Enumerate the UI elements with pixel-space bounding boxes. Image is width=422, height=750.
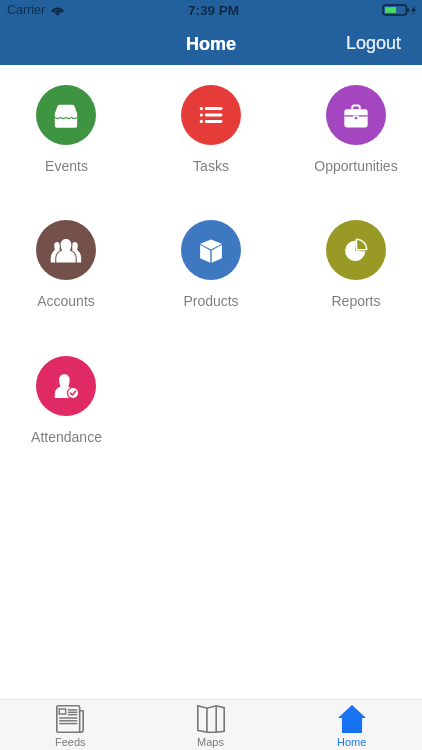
button[interactable]: Feeds bbox=[0, 700, 140, 750]
button[interactable]: Logout bbox=[328, 23, 422, 65]
button[interactable]: Tasks bbox=[155, 85, 267, 174]
staticText: Tasks bbox=[193, 158, 229, 174]
button[interactable]: Maps bbox=[140, 700, 281, 750]
staticText: Logout bbox=[346, 33, 402, 53]
button[interactable]: Reports bbox=[300, 220, 412, 309]
staticText: Products bbox=[183, 293, 239, 309]
staticText: Opportunities bbox=[314, 158, 398, 174]
staticText: Maps bbox=[197, 736, 224, 748]
staticText: Home bbox=[337, 736, 367, 748]
staticText: Events bbox=[45, 158, 88, 174]
button[interactable]: Opportunities bbox=[300, 85, 412, 174]
staticText: Home bbox=[186, 34, 237, 54]
button[interactable]: Accounts bbox=[10, 220, 122, 309]
staticText: Reports bbox=[331, 293, 381, 309]
button[interactable]: Events bbox=[10, 85, 122, 174]
button[interactable]: Products bbox=[155, 220, 267, 309]
staticText: Feeds bbox=[55, 736, 86, 748]
button[interactable]: Home bbox=[281, 700, 422, 750]
button[interactable]: Attendance bbox=[10, 356, 122, 445]
staticText: Accounts bbox=[37, 293, 95, 309]
staticText: 7:39 PM bbox=[188, 3, 240, 18]
staticText: Carrier bbox=[7, 3, 46, 17]
staticText: Attendance bbox=[31, 429, 102, 445]
